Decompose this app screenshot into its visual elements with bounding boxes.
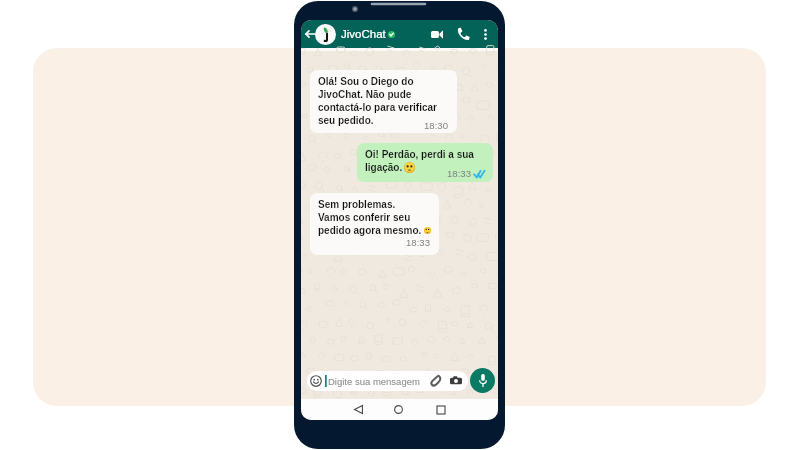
staticText: pedido agora mesmo. xyxy=(318,224,422,237)
other: Emoji xyxy=(310,375,322,387)
staticText: 18:33 xyxy=(406,237,431,248)
button[interactable]: Olá! Sou o Diego do JivoChat. Não pude c… xyxy=(310,70,457,133)
staticText: Oi! Perdão, perdi a sua xyxy=(365,148,474,161)
button[interactable]: Recents xyxy=(432,399,450,420)
button[interactable]: Voice message xyxy=(470,368,495,393)
button[interactable]: Sem problemas. Vamos conferir seu xyxy=(310,193,439,255)
button[interactable]: Oi! Perdão, perdi a sua xyxy=(357,143,493,182)
button[interactable]: Emoji xyxy=(307,371,468,391)
staticText: 18:33 xyxy=(447,168,472,179)
button[interactable]: Video call xyxy=(428,20,446,48)
button[interactable]: Call xyxy=(454,20,472,48)
button[interactable]: Back xyxy=(349,399,367,420)
staticText: Olá! Sou o Diego do JivoChat. Não pude c… xyxy=(318,75,437,127)
button[interactable]: More options xyxy=(477,20,494,48)
button[interactable]: Back xyxy=(302,20,317,48)
staticText: Digite sua mensagem xyxy=(328,376,420,387)
staticText: JivoChat xyxy=(341,28,386,41)
staticText: ligação. xyxy=(365,161,403,174)
staticText: 18:30 xyxy=(424,120,449,131)
button[interactable]: Home xyxy=(389,399,407,420)
other: Camera xyxy=(450,375,462,387)
staticText: Sem problemas. Vamos conferir seu xyxy=(318,198,411,224)
other: Attach xyxy=(430,375,442,387)
